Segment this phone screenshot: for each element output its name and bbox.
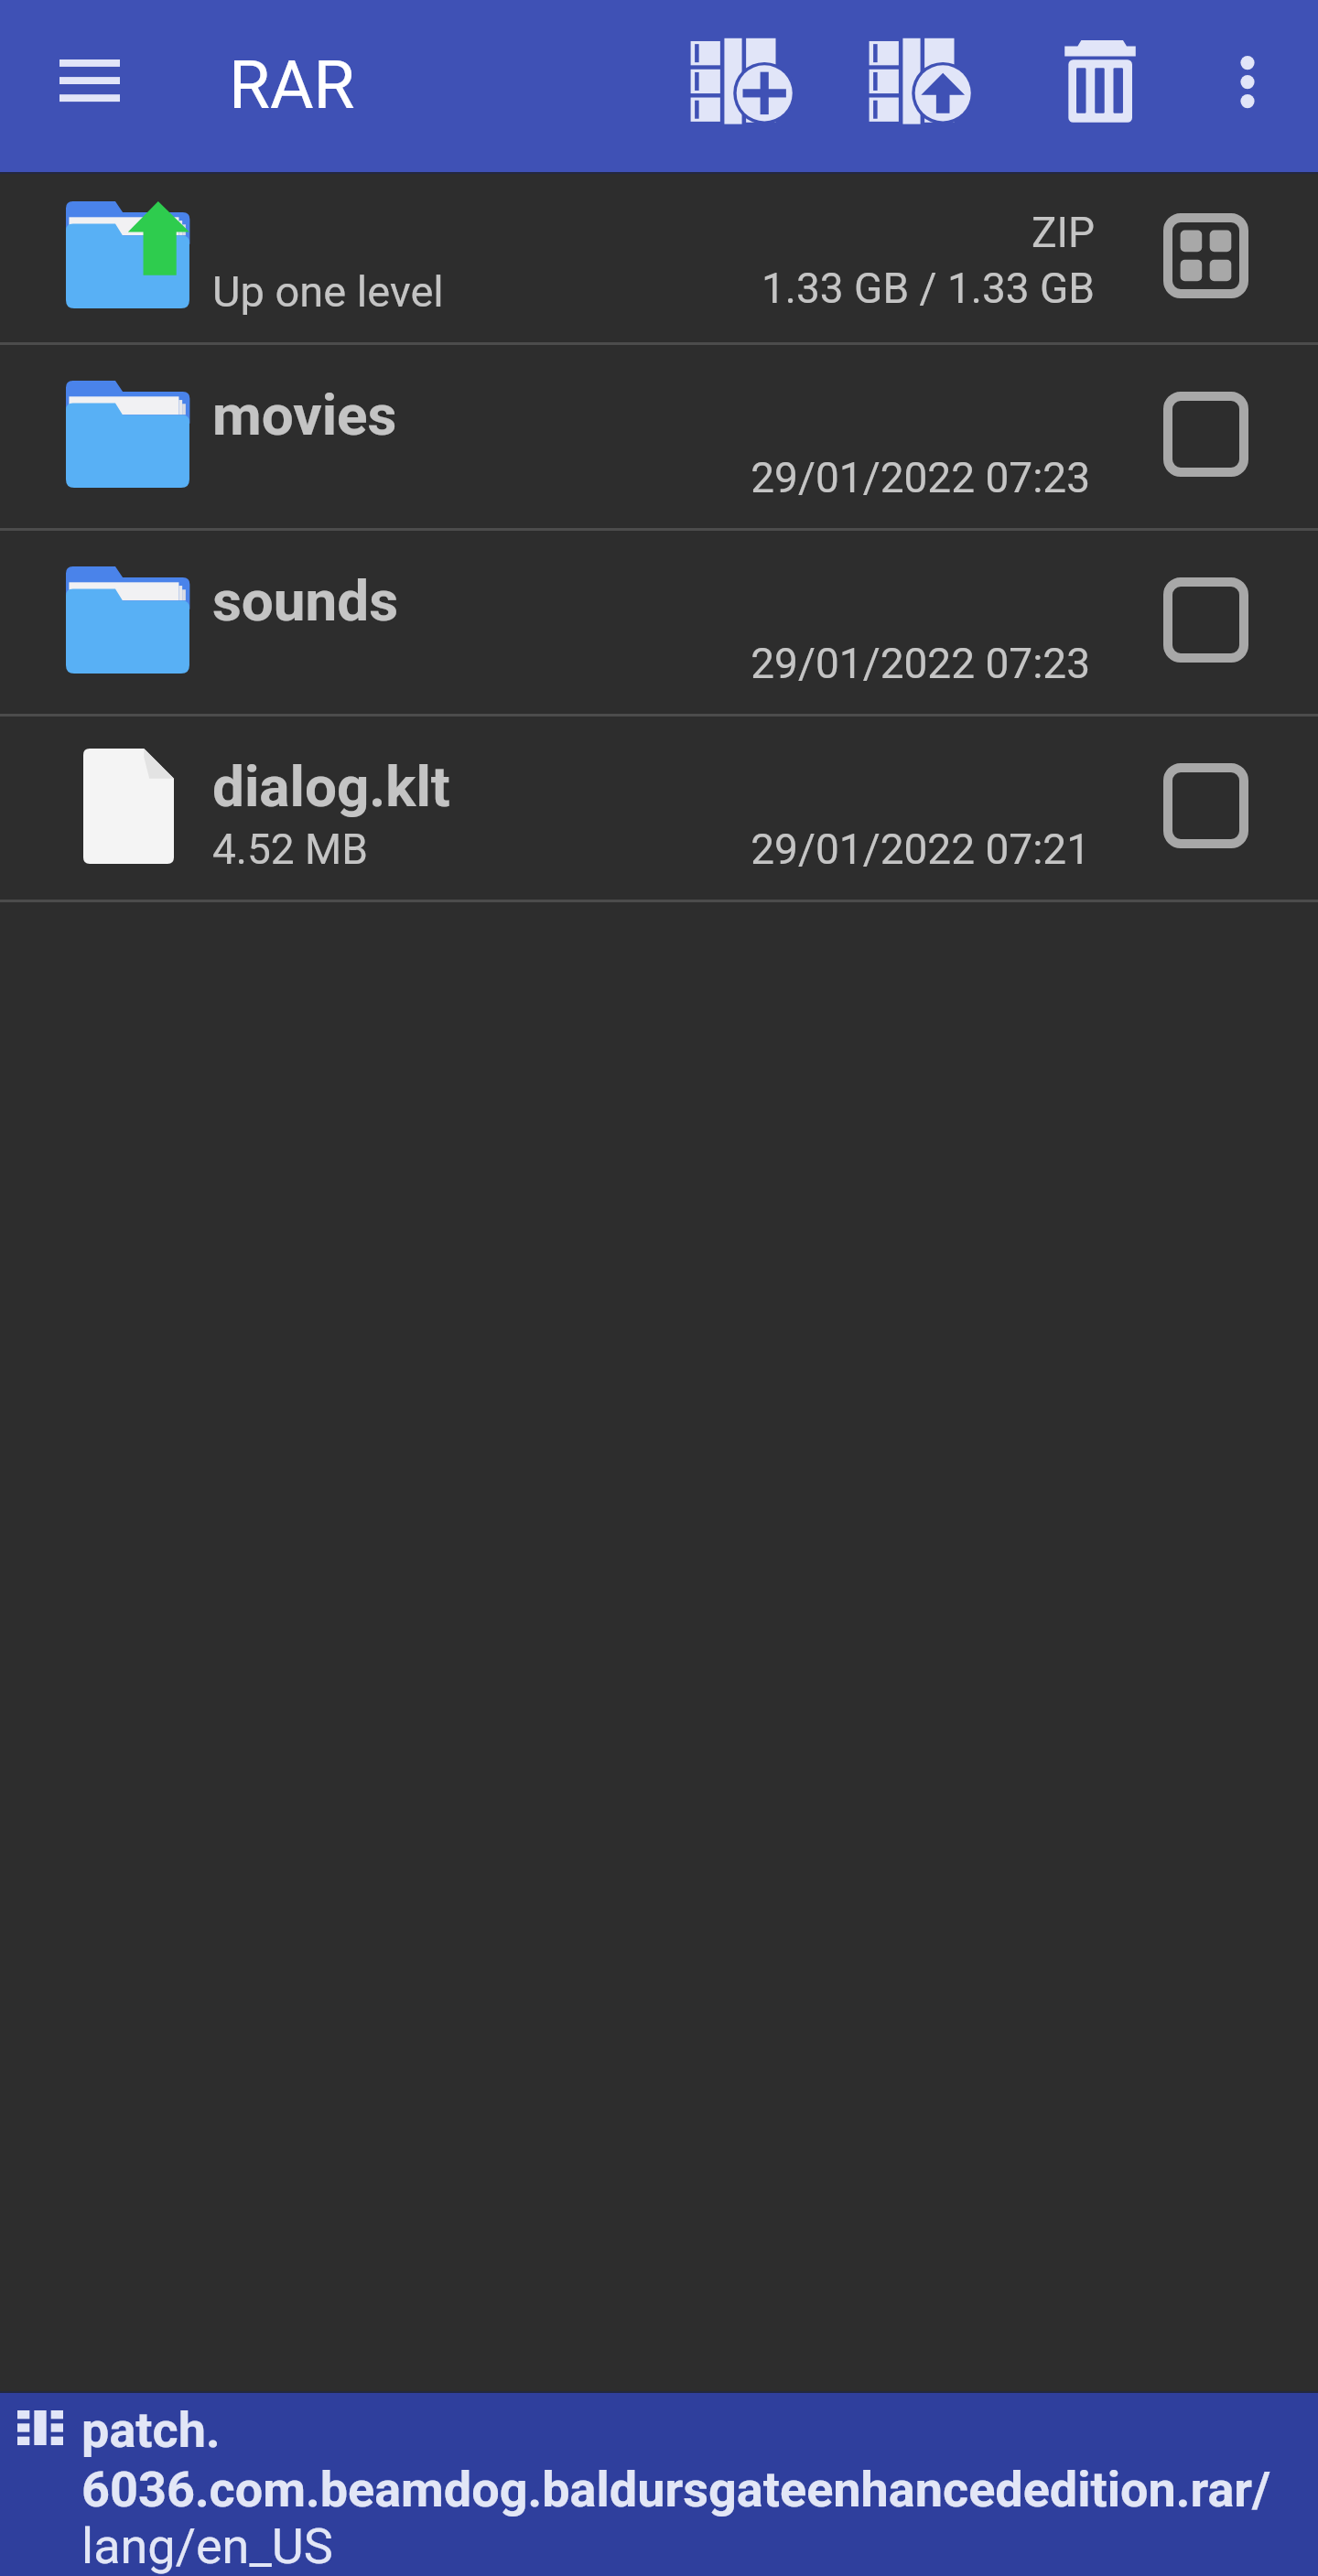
staticText: 29/01/2022 07:21: [266, 825, 1090, 874]
staticText: dialog.klt: [212, 753, 450, 820]
button[interactable]: [0, 714, 1318, 900]
staticText: RAR: [229, 46, 355, 124]
button[interactable]: [0, 172, 1318, 342]
button[interactable]: Select sounds: [1141, 555, 1270, 684]
staticText: sounds: [212, 567, 399, 634]
staticText: Up one level: [212, 266, 444, 317]
button[interactable]: [0, 528, 1318, 714]
staticText: movies: [212, 382, 397, 448]
button[interactable]: patch.: [0, 2393, 1318, 2576]
button[interactable]: Add to archive: [679, 11, 804, 161]
button[interactable]: [0, 342, 1318, 529]
staticText: 6036.com.beamdog.baldursgateenhancededit…: [81, 2461, 1271, 2518]
staticText: ZIP: [271, 208, 1095, 257]
button[interactable]: Switch view mode: [1141, 191, 1270, 320]
staticText: 1.33 GB / 1.33 GB: [271, 264, 1095, 313]
staticText: lang/en_US: [81, 2517, 333, 2575]
staticText: patch.: [81, 2401, 221, 2459]
button[interactable]: Extract to: [858, 11, 982, 161]
staticText: 4.52 MB: [212, 825, 368, 874]
button[interactable]: Select dialog.klt: [1141, 741, 1270, 870]
staticText: 29/01/2022 07:23: [266, 453, 1090, 502]
button[interactable]: More options: [1193, 9, 1302, 156]
button[interactable]: Open navigation drawer: [16, 7, 163, 154]
staticText: 29/01/2022 07:23: [266, 639, 1090, 688]
button[interactable]: Delete: [1038, 11, 1162, 161]
button[interactable]: Select movies: [1141, 370, 1270, 499]
